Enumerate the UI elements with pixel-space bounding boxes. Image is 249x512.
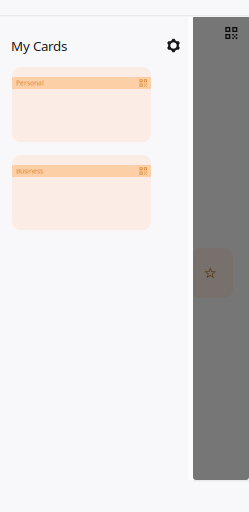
button[interactable]: Settings [159, 31, 187, 59]
button[interactable]: Personal [12, 67, 151, 142]
staticText: Business [16, 167, 43, 175]
staticText: Personal [16, 79, 44, 87]
staticText: My Cards [11, 37, 67, 55]
button[interactable]: Business [12, 155, 151, 230]
